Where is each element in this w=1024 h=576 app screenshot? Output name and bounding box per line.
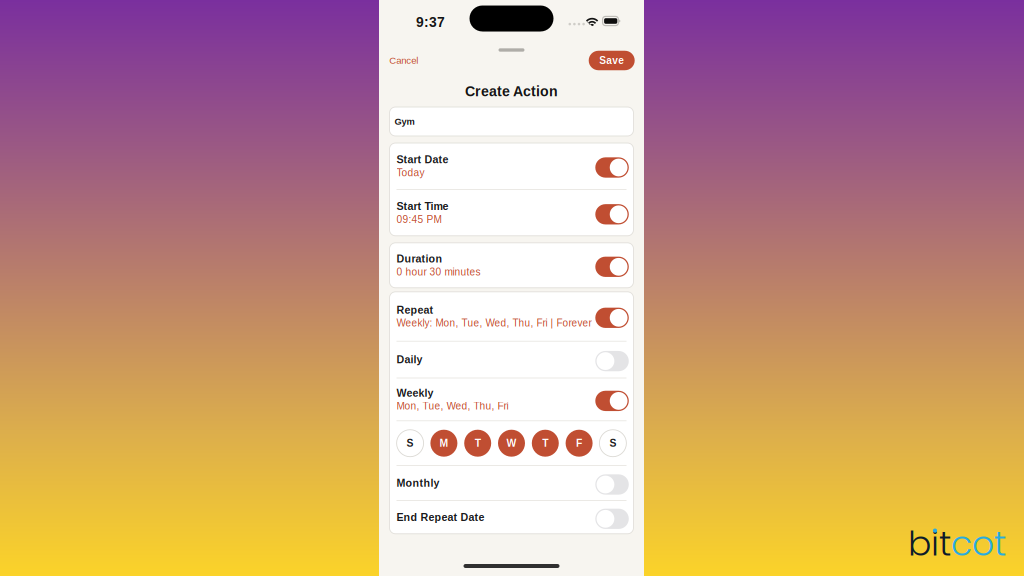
- staticText: Weekly: [396, 387, 433, 399]
- button[interactable]: F: [566, 430, 593, 457]
- staticText: Create Action: [465, 83, 558, 99]
- button[interactable]: Toggle off: [595, 509, 629, 529]
- staticText: 09:45 PM: [396, 214, 441, 225]
- staticText: Daily: [396, 354, 422, 365]
- button[interactable]: Toggle off: [595, 351, 629, 371]
- staticText: T: [475, 437, 481, 449]
- staticText: Repeat: [396, 304, 433, 316]
- staticText: Monthly: [396, 477, 439, 489]
- staticText: Mon, Tue, Wed, Thu, Fri: [396, 400, 508, 412]
- staticText: b: [908, 519, 931, 567]
- button[interactable]: T: [464, 430, 491, 457]
- staticText: S: [609, 437, 616, 449]
- staticText: 0 hour 30 minutes: [396, 266, 480, 278]
- button[interactable]: S: [397, 430, 424, 457]
- staticText: T: [542, 437, 548, 449]
- button[interactable]: Cancel: [389, 50, 418, 70]
- staticText: t: [939, 519, 951, 567]
- staticText: Save: [599, 55, 624, 66]
- staticText: Cancel: [389, 55, 418, 66]
- button[interactable]: Duration: [389, 243, 633, 288]
- button[interactable]: Start Date: [389, 143, 633, 189]
- button[interactable]: M: [430, 430, 457, 457]
- staticText: Gym: [394, 116, 414, 127]
- button[interactable]: W: [498, 430, 525, 457]
- button[interactable]: Toggle on: [595, 257, 629, 277]
- staticText: S: [407, 437, 414, 449]
- button[interactable]: Toggle on: [595, 157, 629, 178]
- button[interactable]: Monthly: [389, 466, 633, 500]
- button[interactable]: Toggle on: [595, 391, 629, 411]
- staticText: End Repeat Date: [396, 511, 484, 523]
- staticText: Start Time: [396, 200, 448, 212]
- staticText: 9:37: [416, 14, 445, 30]
- staticText: cot: [951, 519, 1006, 567]
- button[interactable]: End Repeat Date: [389, 501, 633, 534]
- staticText: W: [506, 437, 516, 449]
- staticText: F: [576, 437, 582, 449]
- staticText: Start Date: [396, 154, 448, 165]
- button[interactable]: T: [532, 430, 559, 457]
- button[interactable]: Daily: [389, 342, 633, 378]
- staticText: Weekly: Mon, Tue, Wed, Thu, Fri | Foreve…: [396, 317, 591, 329]
- button[interactable]: Save: [589, 51, 635, 70]
- staticText: M: [439, 437, 448, 449]
- button[interactable]: Toggle off: [595, 474, 629, 495]
- button[interactable]: S: [599, 430, 626, 457]
- button[interactable]: Repeat: [389, 292, 633, 341]
- button[interactable]: Weekly: [389, 378, 633, 420]
- button[interactable]: Toggle on: [595, 308, 629, 328]
- staticText: Today: [396, 167, 424, 178]
- staticText: i: [931, 519, 939, 567]
- button[interactable]: Start Time: [389, 190, 633, 236]
- staticText: Duration: [396, 253, 442, 265]
- button[interactable]: Toggle on: [595, 204, 629, 224]
